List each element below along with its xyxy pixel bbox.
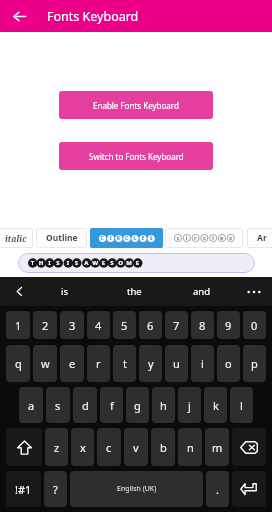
button[interactable]: Ar bbox=[247, 228, 272, 248]
button[interactable]: y bbox=[139, 345, 162, 382]
button[interactable]: Previous suggestions bbox=[8, 277, 30, 306]
button[interactable]: m bbox=[205, 428, 229, 466]
button[interactable]: 7 bbox=[165, 311, 188, 339]
button[interactable]: u bbox=[165, 345, 188, 382]
button[interactable]: h bbox=[152, 387, 175, 423]
button[interactable]: d bbox=[73, 387, 97, 423]
button[interactable]: l bbox=[230, 387, 253, 423]
staticText: a bbox=[28, 398, 35, 413]
staticText: 9 bbox=[225, 318, 232, 333]
button[interactable]: Enable Fonts Keyboard bbox=[59, 91, 213, 119]
staticText: Outline bbox=[46, 232, 78, 244]
staticText: !#1 bbox=[15, 482, 32, 497]
button[interactable]: i bbox=[191, 345, 214, 382]
staticText: t bbox=[123, 356, 127, 371]
button[interactable]: 3 bbox=[60, 311, 84, 339]
button[interactable]: n bbox=[178, 428, 202, 466]
staticText: k bbox=[213, 398, 219, 413]
staticText: English (UK) bbox=[117, 484, 157, 494]
button[interactable]: e bbox=[60, 345, 84, 382]
button[interactable]: a bbox=[19, 387, 43, 423]
button[interactable]: !#1 bbox=[6, 471, 41, 507]
button[interactable]: 2 bbox=[33, 311, 57, 339]
staticText: m bbox=[212, 440, 223, 455]
staticText: is bbox=[61, 285, 69, 298]
staticText: Fonts Keyboard bbox=[47, 8, 139, 25]
staticText: and bbox=[193, 285, 211, 298]
button[interactable]: q bbox=[6, 345, 30, 382]
staticText: the bbox=[127, 285, 142, 298]
button[interactable]: f bbox=[100, 387, 123, 423]
staticText: b bbox=[160, 440, 167, 455]
staticText: Ar bbox=[257, 232, 267, 244]
button[interactable]: 1 bbox=[6, 311, 30, 339]
button[interactable]: Switch to Fonts Keyboard bbox=[59, 142, 213, 170]
button[interactable]: s bbox=[46, 387, 70, 423]
staticText: n bbox=[187, 440, 194, 455]
staticText: i bbox=[201, 356, 204, 371]
button[interactable]: t bbox=[113, 345, 136, 382]
button[interactable]: Back bbox=[7, 4, 31, 28]
staticText: h bbox=[160, 398, 167, 413]
staticText: e bbox=[69, 356, 76, 371]
staticText: j bbox=[188, 398, 191, 413]
button[interactable]: More suggestions bbox=[240, 277, 268, 306]
staticText: 0 bbox=[251, 318, 258, 333]
staticText: f bbox=[110, 398, 114, 413]
staticText: 4 bbox=[95, 318, 102, 333]
button[interactable]: v bbox=[124, 428, 148, 466]
staticText: w bbox=[41, 356, 50, 371]
button[interactable]: j bbox=[178, 387, 201, 423]
staticText: Enable Fonts Keyboard bbox=[93, 100, 179, 111]
button[interactable]: 9 bbox=[217, 311, 240, 339]
staticText: Switch to Fonts Keyboard bbox=[89, 151, 184, 162]
button[interactable]: 0 bbox=[243, 311, 266, 339]
button[interactable] bbox=[165, 228, 243, 248]
button[interactable]: the bbox=[110, 277, 158, 306]
button[interactable]: z bbox=[45, 428, 68, 466]
staticText: 5 bbox=[121, 318, 128, 333]
staticText: y bbox=[148, 356, 154, 371]
button[interactable]: Backspace bbox=[232, 428, 266, 466]
staticText: q bbox=[15, 356, 22, 371]
button[interactable]: c bbox=[97, 428, 121, 466]
staticText: z bbox=[54, 440, 60, 455]
staticText: r bbox=[96, 356, 101, 371]
button[interactable] bbox=[90, 228, 163, 248]
button[interactable]: b bbox=[151, 428, 175, 466]
button[interactable]: ? bbox=[44, 471, 67, 507]
staticText: 3 bbox=[69, 318, 76, 333]
button[interactable]: x bbox=[71, 428, 94, 466]
button[interactable]: Shift bbox=[6, 428, 42, 466]
staticText: x bbox=[80, 440, 86, 455]
staticText: 6 bbox=[147, 318, 154, 333]
button[interactable]: w bbox=[33, 345, 57, 382]
button[interactable]: Enter bbox=[232, 471, 266, 507]
button[interactable]: . bbox=[206, 471, 229, 507]
staticText: s bbox=[55, 398, 61, 413]
button[interactable]: g bbox=[126, 387, 149, 423]
staticText: l bbox=[240, 398, 243, 413]
button[interactable]: p bbox=[243, 345, 266, 382]
staticText: c bbox=[106, 440, 112, 455]
button[interactable]: 8 bbox=[191, 311, 214, 339]
button[interactable]: 5 bbox=[113, 311, 136, 339]
button[interactable] bbox=[18, 253, 255, 273]
staticText: o bbox=[225, 356, 232, 371]
button[interactable]: English (UK) bbox=[70, 471, 203, 507]
button[interactable]: k bbox=[204, 387, 227, 423]
button[interactable]: 4 bbox=[87, 311, 110, 339]
staticText: 8 bbox=[199, 318, 206, 333]
staticText: 7 bbox=[173, 318, 180, 333]
button[interactable]: 6 bbox=[139, 311, 162, 339]
staticText: u bbox=[173, 356, 180, 371]
staticText: g bbox=[134, 398, 141, 413]
staticText: d bbox=[82, 398, 89, 413]
button[interactable]: o bbox=[217, 345, 240, 382]
button[interactable]: is bbox=[41, 277, 89, 306]
button[interactable]: and bbox=[178, 277, 226, 306]
button[interactable]: r bbox=[87, 345, 110, 382]
button[interactable]: Outline bbox=[36, 228, 87, 248]
staticText: 1 bbox=[15, 318, 22, 333]
button[interactable]: italic bbox=[0, 228, 33, 248]
